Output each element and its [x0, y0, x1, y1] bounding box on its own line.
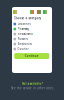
button[interactable]: Flowers [12, 36, 52, 41]
button[interactable]: Electronics [12, 41, 52, 46]
staticText: Pharmacy [18, 27, 29, 31]
staticText: Choose a category [13, 16, 40, 20]
button[interactable]: Restaurants [12, 31, 52, 36]
staticText: Electronics [18, 42, 32, 46]
button[interactable]: Continue [14, 53, 49, 59]
staticText: See the service in other cities [11, 86, 53, 90]
staticText: Groceries [18, 22, 31, 26]
button[interactable]: Pharmacy [12, 26, 52, 31]
button[interactable]: Courier [12, 46, 52, 51]
staticText: Courier [18, 47, 29, 51]
staticText: Restaurants [18, 32, 33, 36]
staticText: Continue [25, 54, 39, 58]
staticText: Flowers [18, 37, 28, 41]
staticText: Not available? [21, 82, 42, 85]
button[interactable]: Groceries [12, 21, 52, 26]
